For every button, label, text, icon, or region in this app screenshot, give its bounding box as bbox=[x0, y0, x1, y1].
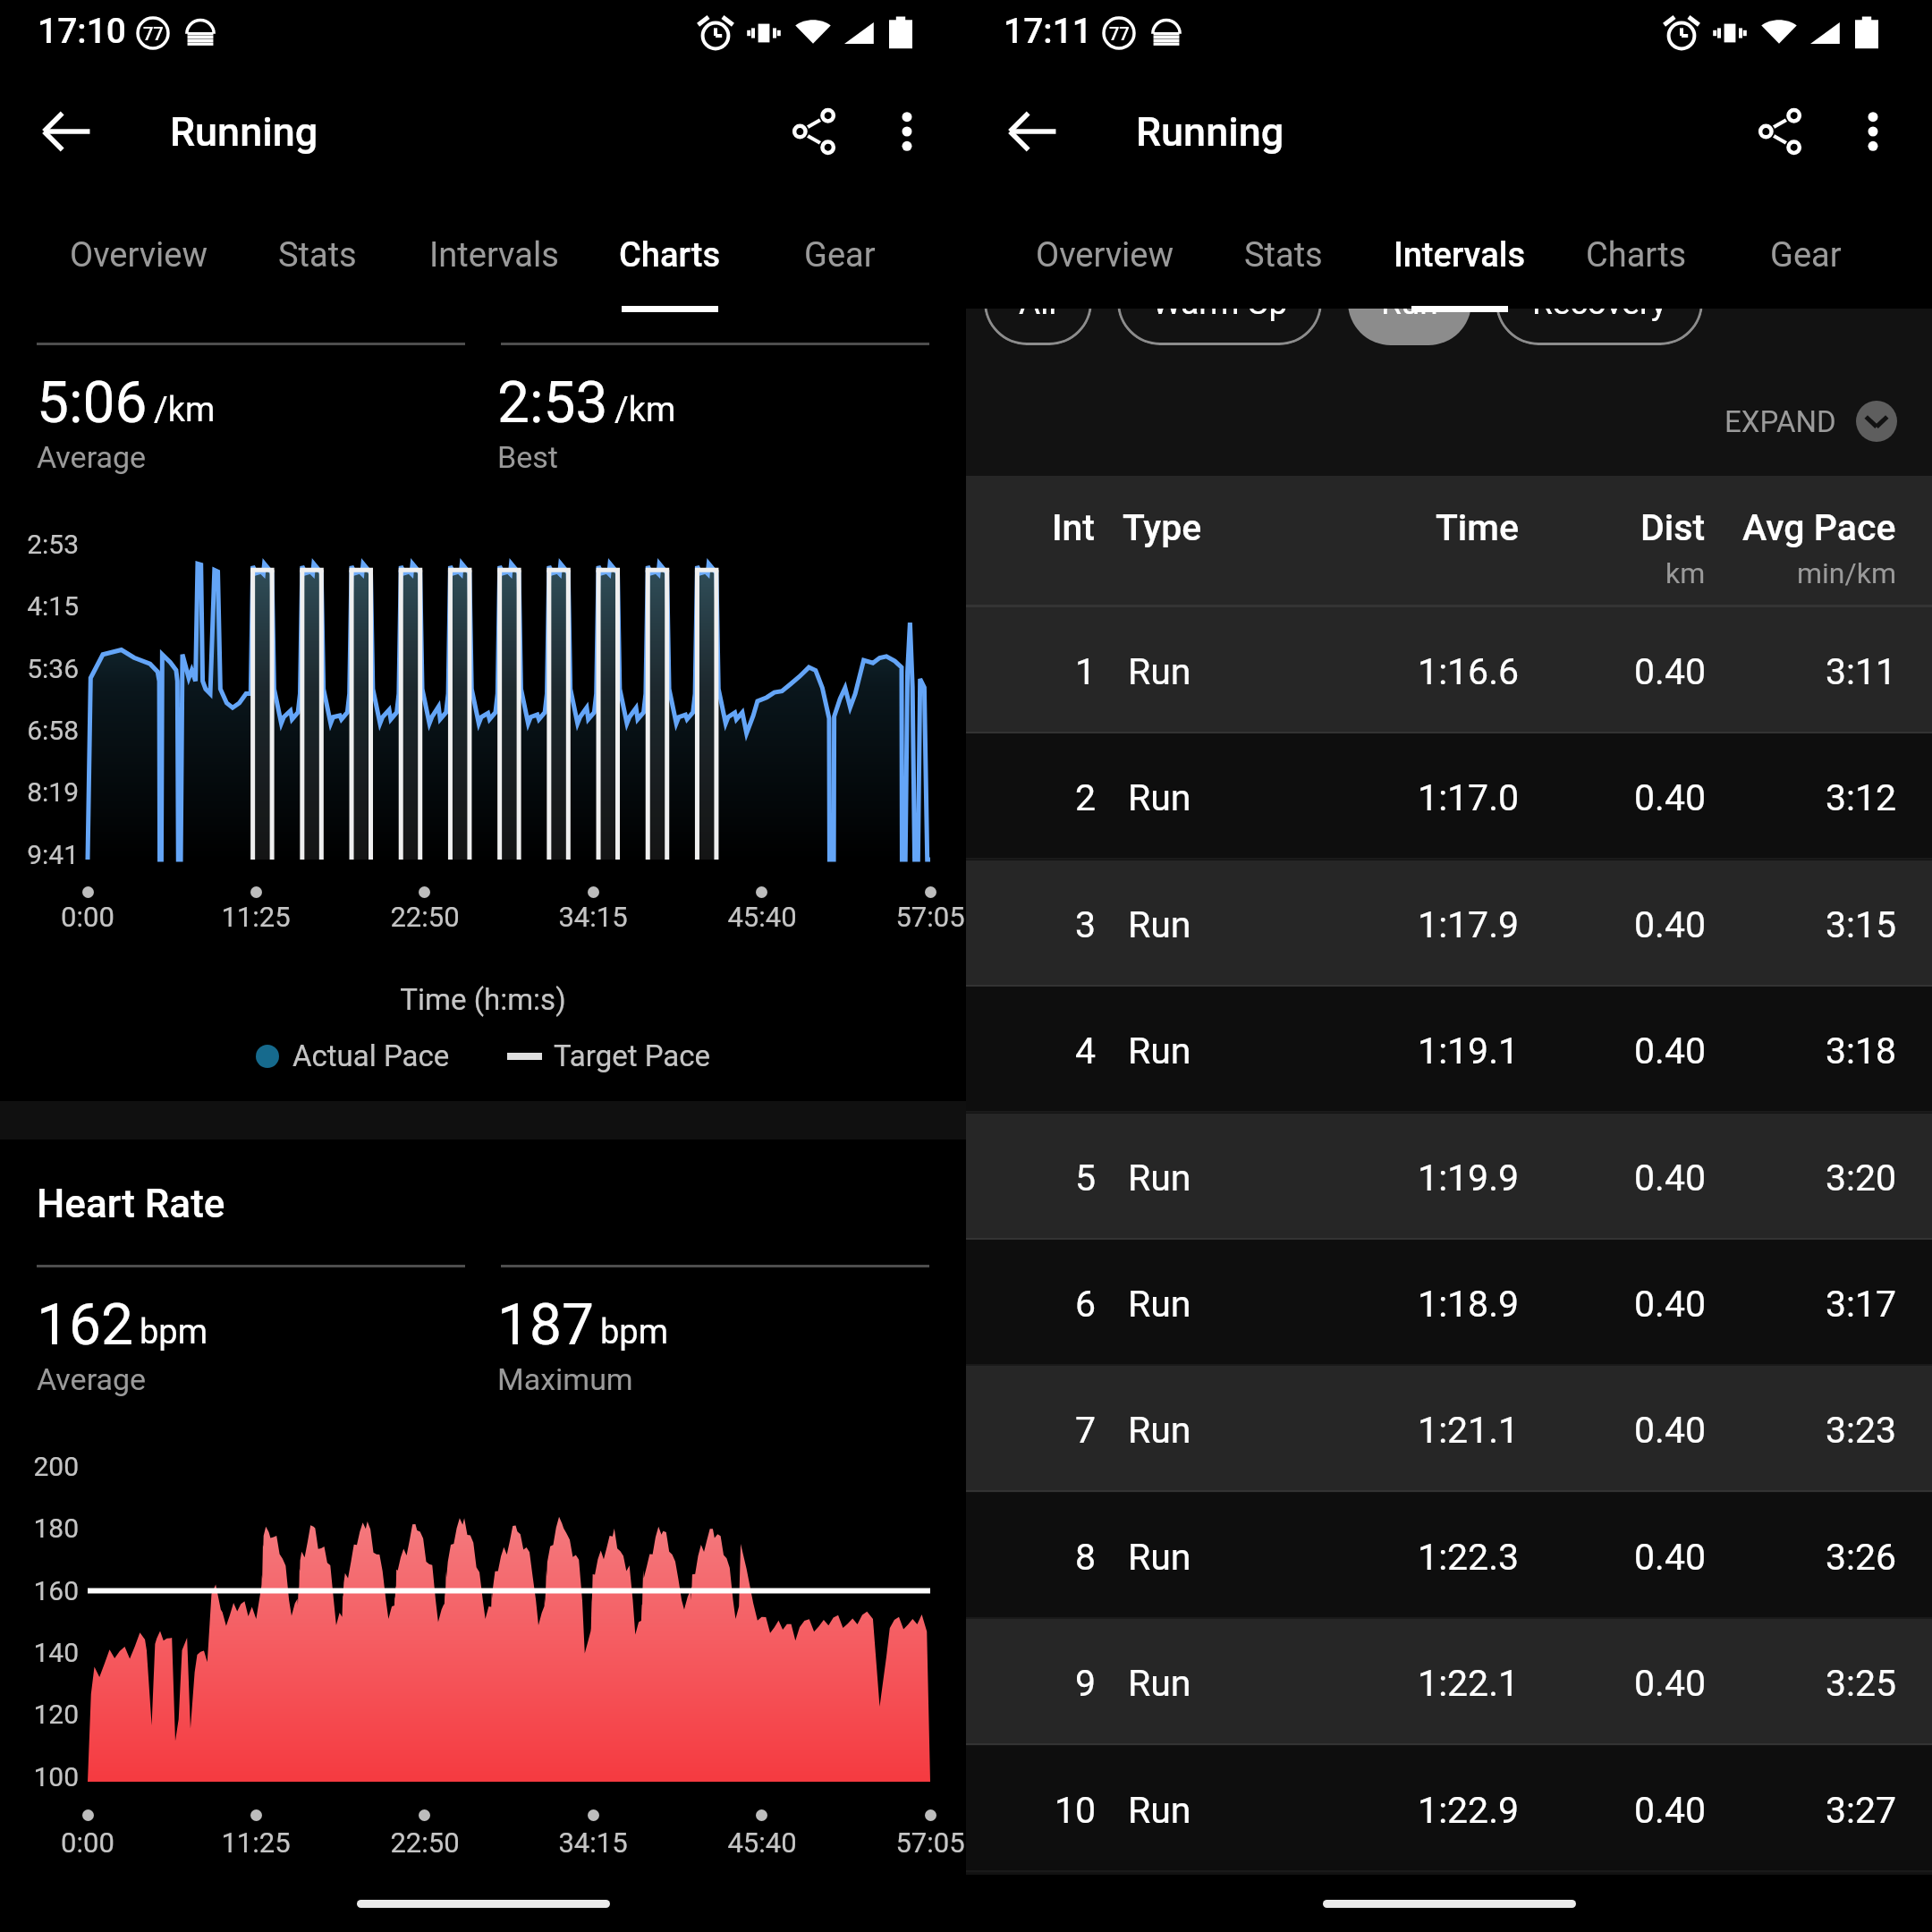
staticText: 100 bbox=[0, 1761, 79, 1792]
button[interactable]: Recovery bbox=[1496, 259, 1703, 345]
button[interactable]: Back bbox=[20, 85, 113, 178]
staticText: Stats bbox=[278, 235, 357, 275]
staticText: 3:26 bbox=[1717, 1536, 1896, 1579]
staticText: 3:25 bbox=[1717, 1662, 1896, 1705]
staticText: 11:25 bbox=[184, 901, 327, 933]
staticText: All bbox=[1019, 284, 1057, 322]
button[interactable]: 6 bbox=[966, 1240, 1932, 1366]
button[interactable]: EXPAND bbox=[1556, 381, 1897, 462]
button[interactable]: 4 bbox=[966, 987, 1932, 1113]
staticText: Time bbox=[1340, 506, 1519, 549]
staticText: Overview bbox=[70, 235, 208, 275]
button[interactable]: Charts bbox=[1555, 181, 1717, 309]
staticText: 0.40 bbox=[1527, 1030, 1706, 1072]
staticText: Run bbox=[1128, 1662, 1191, 1705]
staticText: EXPAND bbox=[1724, 404, 1836, 439]
staticText: 1:19.9 bbox=[1340, 1157, 1519, 1199]
staticText: Warm Up bbox=[1152, 284, 1288, 322]
button[interactable]: All bbox=[984, 259, 1092, 345]
staticText: 34:15 bbox=[521, 1826, 665, 1859]
staticText: Heart Rate bbox=[37, 1181, 225, 1227]
button[interactable]: 3 bbox=[966, 860, 1932, 987]
staticText: 120 bbox=[0, 1699, 79, 1730]
staticText: Run bbox=[1128, 1536, 1191, 1579]
staticText: 45:40 bbox=[691, 1826, 834, 1859]
staticText: 0.40 bbox=[1527, 1409, 1706, 1452]
staticText: 2:53 bbox=[497, 369, 608, 436]
button[interactable]: 10 bbox=[966, 1746, 1932, 1872]
button[interactable]: Share bbox=[767, 85, 860, 178]
staticText: 11:25 bbox=[184, 1826, 327, 1859]
staticText: Run bbox=[1128, 1409, 1191, 1452]
staticText: 0.40 bbox=[1527, 1283, 1706, 1326]
button[interactable]: Share bbox=[1733, 85, 1826, 178]
button[interactable]: 8 bbox=[966, 1493, 1932, 1619]
button[interactable]: Stats bbox=[1212, 181, 1355, 309]
staticText: 180 bbox=[0, 1513, 79, 1544]
button[interactable]: 7 bbox=[966, 1366, 1932, 1492]
button[interactable]: More options bbox=[1826, 85, 1919, 178]
staticText: Target Pace bbox=[554, 1038, 711, 1073]
staticText: Intervals bbox=[1394, 235, 1526, 275]
button[interactable]: Intervals bbox=[1356, 181, 1563, 309]
staticText: 1:16.6 bbox=[1340, 650, 1519, 693]
button[interactable]: 5 bbox=[966, 1114, 1932, 1240]
staticText: Maximum bbox=[497, 1361, 633, 1397]
button[interactable]: Back bbox=[986, 85, 1079, 178]
button[interactable]: Stats bbox=[246, 181, 389, 309]
staticText: bpm bbox=[600, 1312, 668, 1352]
staticText: Charts bbox=[1586, 235, 1687, 275]
staticText: 200 bbox=[0, 1451, 79, 1482]
staticText: 3:18 bbox=[1717, 1030, 1896, 1072]
staticText: Overview bbox=[1036, 235, 1174, 275]
staticText: 4:15 bbox=[0, 590, 79, 622]
staticText: 0:00 bbox=[16, 1826, 159, 1859]
staticText: Average bbox=[37, 1361, 147, 1397]
button[interactable]: 2 bbox=[966, 733, 1932, 860]
staticText: Best bbox=[497, 439, 558, 475]
staticText: 140 bbox=[0, 1637, 79, 1668]
staticText: 0.40 bbox=[1527, 650, 1706, 693]
staticText: Gear bbox=[1770, 235, 1842, 275]
button[interactable]: Intervals bbox=[390, 181, 597, 309]
staticText: 0.40 bbox=[1527, 903, 1706, 946]
button[interactable]: Overview bbox=[42, 181, 235, 309]
staticText: 8 bbox=[1006, 1536, 1096, 1579]
staticText: 6 bbox=[1006, 1283, 1096, 1326]
staticText: 77 bbox=[143, 23, 164, 44]
staticText: 1:22.1 bbox=[1340, 1662, 1519, 1705]
staticText: 9 bbox=[1006, 1662, 1096, 1705]
staticText: 6:58 bbox=[0, 715, 79, 746]
staticText: 22:50 bbox=[353, 901, 496, 933]
button[interactable]: Charts bbox=[589, 181, 751, 309]
staticText: 10 bbox=[1006, 1789, 1096, 1832]
staticText: 1:19.1 bbox=[1340, 1030, 1519, 1072]
button[interactable]: 1 bbox=[966, 607, 1932, 733]
staticText: 3:23 bbox=[1717, 1409, 1896, 1452]
staticText: 1:22.3 bbox=[1340, 1536, 1519, 1579]
staticText: 4 bbox=[1006, 1030, 1096, 1072]
staticText: Time (h:m:s) bbox=[0, 982, 966, 1017]
staticText: Running bbox=[170, 108, 318, 156]
staticText: Run bbox=[1128, 1789, 1191, 1832]
button[interactable]: 9 bbox=[966, 1619, 1932, 1745]
staticText: 5:36 bbox=[0, 653, 79, 684]
staticText: 5 bbox=[1006, 1157, 1096, 1199]
button[interactable]: Gear bbox=[1738, 181, 1874, 309]
staticText: 0.40 bbox=[1527, 1789, 1706, 1832]
staticText: 162 bbox=[37, 1292, 133, 1359]
button[interactable]: More options bbox=[860, 85, 953, 178]
staticText: 0.40 bbox=[1527, 1536, 1706, 1579]
staticText: Dist bbox=[1640, 506, 1706, 549]
staticText: 0.40 bbox=[1527, 776, 1706, 819]
button[interactable]: Warm Up bbox=[1117, 259, 1322, 345]
staticText: 34:15 bbox=[521, 901, 665, 933]
staticText: 3 bbox=[1006, 903, 1096, 946]
button[interactable]: Gear bbox=[772, 181, 908, 309]
staticText: 1:17.9 bbox=[1340, 903, 1519, 946]
staticText: 3:11 bbox=[1717, 650, 1896, 693]
staticText: Run bbox=[1128, 1157, 1191, 1199]
button[interactable]: Run bbox=[1348, 259, 1471, 345]
button[interactable]: Overview bbox=[1008, 181, 1201, 309]
staticText: 0.40 bbox=[1527, 1157, 1706, 1199]
